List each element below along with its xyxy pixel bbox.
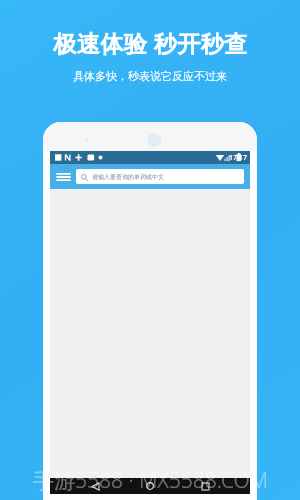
staticText: 请输入要查询的单词或中文 [92,173,164,181]
staticText: 具体多快，秒表说它反应不过来 [73,69,227,83]
staticText: 极速体验 秒开秒查 [53,27,248,58]
button[interactable]: 请输入要查询的单词或中文 [76,169,244,184]
button[interactable]: Back [85,478,105,494]
staticText: 手游5588 · MX5588.COM [33,466,268,495]
staticText: 17:17 [229,153,247,163]
button[interactable]: Menu [50,164,76,189]
button[interactable]: Home [140,478,160,494]
button[interactable]: Recent apps [195,478,215,494]
